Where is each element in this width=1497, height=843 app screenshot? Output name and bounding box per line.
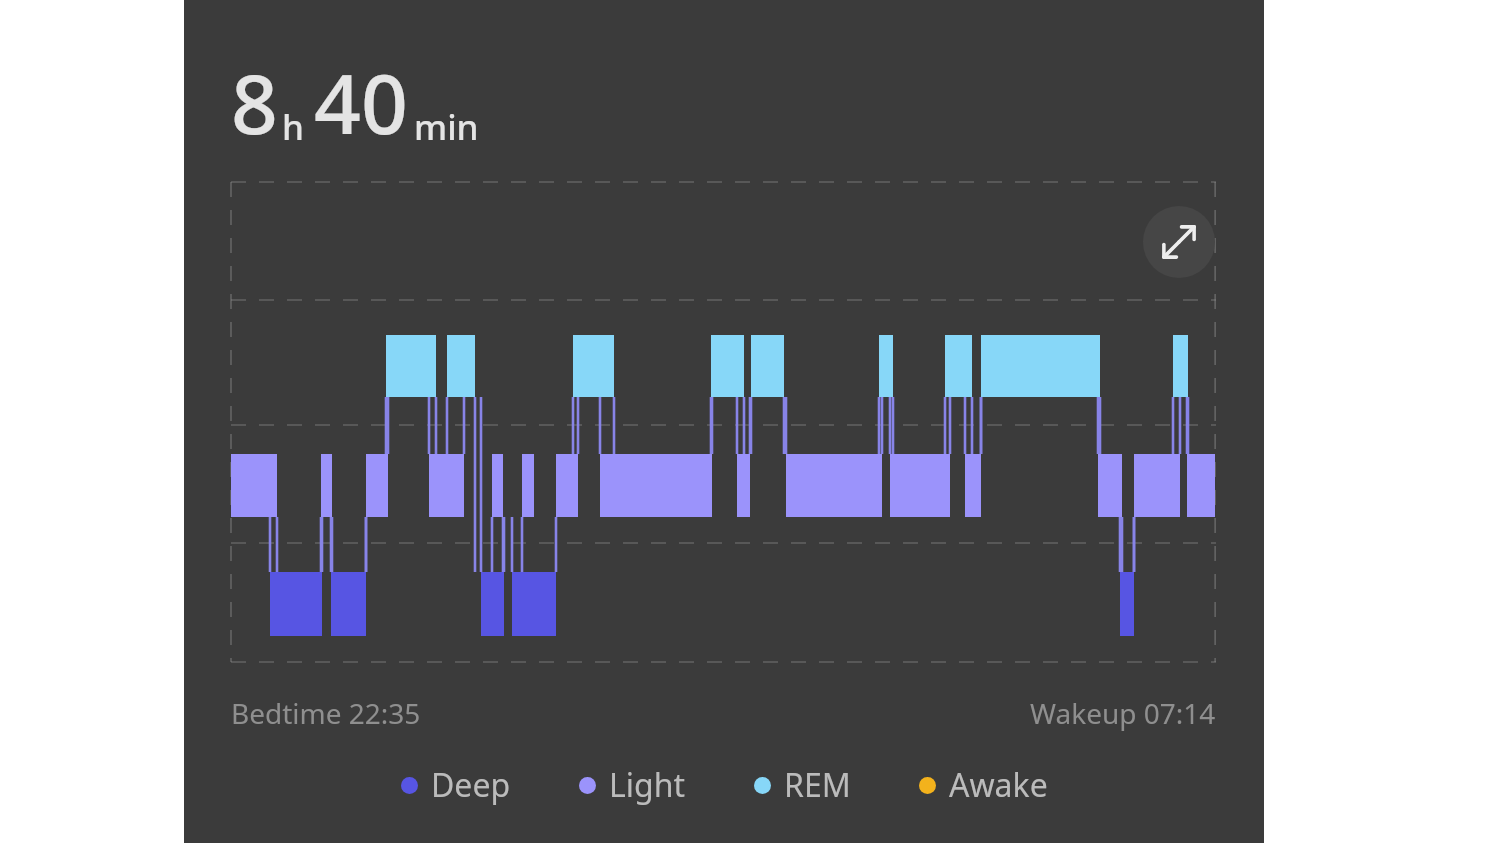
button[interactable]: Expand chart [1143, 206, 1215, 278]
staticText: Wakeup 07:14 [1030, 694, 1216, 732]
staticText: REM [784, 763, 851, 807]
staticText: Deep [431, 763, 511, 807]
staticText: h [282, 103, 304, 151]
button[interactable]: Light [579, 763, 686, 807]
button[interactable]: Awake [919, 763, 1048, 807]
staticText: Awake [949, 763, 1048, 807]
button[interactable]: Deep [401, 763, 511, 807]
staticText: min [414, 103, 479, 151]
button[interactable]: REM [754, 763, 851, 807]
button[interactable]: 8 [184, 0, 1264, 843]
staticText: Bedtime 22:35 [231, 694, 421, 732]
staticText: 8 [231, 46, 278, 158]
staticText: 40 [314, 46, 408, 158]
staticText: Light [609, 763, 686, 807]
